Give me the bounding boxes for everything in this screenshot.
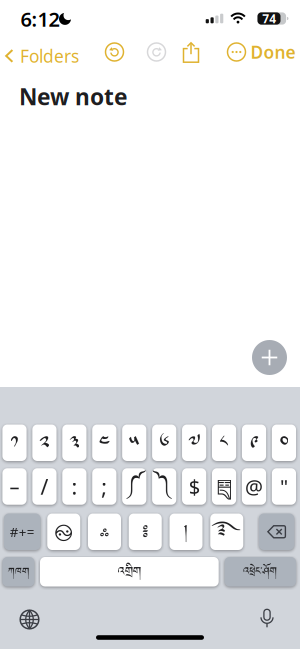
staticText: ༥ <box>129 427 140 459</box>
button[interactable]: Undo <box>104 42 124 62</box>
staticText: Done <box>250 40 295 63</box>
staticText: – <box>9 473 19 500</box>
staticText: ༔ <box>142 516 149 548</box>
button[interactable]: ༧ <box>182 424 206 461</box>
staticText: ༠ <box>279 427 288 459</box>
button[interactable]: #+= <box>4 513 40 550</box>
button[interactable]: ༼ <box>122 468 146 505</box>
staticText: Folders <box>20 44 79 67</box>
staticText: འཕྲེང་ཤོག <box>243 561 277 582</box>
button[interactable]: ༜ <box>88 513 121 550</box>
button[interactable]: ༨ <box>212 424 236 461</box>
button[interactable]: ༽ <box>152 468 176 505</box>
button[interactable]: Dictation <box>258 608 275 627</box>
button[interactable]: More <box>226 42 246 62</box>
button[interactable]: ། <box>169 513 202 550</box>
button[interactable]: ༡ <box>2 424 27 461</box>
button[interactable]: ࿐ <box>210 513 243 550</box>
staticText: " <box>280 473 288 500</box>
button[interactable]: ༩ <box>242 424 266 461</box>
staticText: ། <box>183 516 188 548</box>
staticText: ࿐ <box>212 514 241 550</box>
staticText: ༨ <box>220 427 229 459</box>
button[interactable]: ༣ <box>62 424 86 461</box>
staticText: ༦ <box>159 427 169 459</box>
button[interactable]: Next keyboard <box>19 609 40 630</box>
button[interactable]: ༥ <box>122 424 146 461</box>
button[interactable]: : <box>62 468 86 505</box>
staticText: ༧ <box>188 427 200 459</box>
button[interactable]: $ <box>182 468 206 505</box>
staticText: $ <box>189 473 200 500</box>
staticText: ༩ <box>250 427 258 459</box>
staticText: ༕ <box>216 470 232 502</box>
staticText: ༤ <box>99 427 110 459</box>
button[interactable]: Share <box>182 42 199 63</box>
button[interactable]: Done <box>250 40 295 63</box>
staticText: ༽ <box>155 469 173 506</box>
button[interactable]: ; <box>92 468 116 505</box>
button[interactable]: Folders <box>5 44 79 67</box>
button[interactable]: " <box>272 468 296 505</box>
button[interactable]: Add <box>252 340 287 375</box>
staticText: ༡ <box>10 427 18 459</box>
button[interactable]: ༦ <box>152 424 176 461</box>
button[interactable]: @ <box>242 468 266 505</box>
staticText: ; <box>101 472 107 501</box>
staticText: 6:12 <box>20 6 59 32</box>
button[interactable]: ࿊ <box>47 513 80 550</box>
button[interactable]: ༕ <box>212 468 236 505</box>
staticText: #+= <box>10 523 35 541</box>
button[interactable]: ༤ <box>92 424 116 461</box>
staticText: 74 <box>262 10 276 26</box>
staticText: : <box>71 472 77 501</box>
button[interactable]: འགྲིག <box>40 557 219 586</box>
button[interactable]: ༢ <box>32 424 56 461</box>
staticText: ༣ <box>69 427 79 459</box>
button[interactable]: འཕྲེང་ཤོག <box>225 557 296 586</box>
staticText: ࿊ <box>54 515 73 549</box>
staticText: / <box>40 472 48 501</box>
staticText: ༜ <box>99 515 109 549</box>
button[interactable]: ཀཁག <box>2 557 34 586</box>
button[interactable]: ༔ <box>129 513 162 550</box>
staticText: ཀཁག <box>8 562 29 582</box>
button[interactable]: Delete <box>259 513 294 550</box>
button[interactable]: Redo <box>146 42 166 62</box>
staticText: New note <box>19 81 128 112</box>
staticText: ༼ <box>125 469 143 506</box>
staticText: @ <box>245 473 263 500</box>
staticText: འགྲིག <box>118 560 141 583</box>
button[interactable]: – <box>2 468 27 505</box>
button[interactable]: ༠ <box>272 424 296 461</box>
staticText: ༢ <box>39 427 49 459</box>
button[interactable]: / <box>32 468 56 505</box>
